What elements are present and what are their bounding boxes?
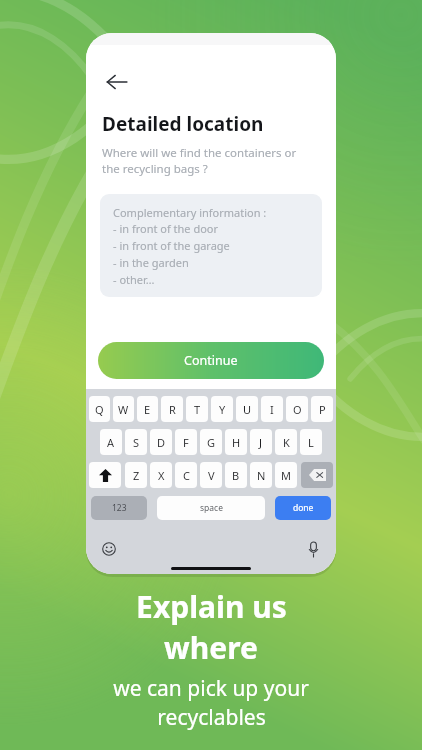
button[interactable]: L bbox=[300, 429, 322, 455]
button[interactable]: Back bbox=[100, 65, 134, 99]
button[interactable]: 123 bbox=[91, 496, 147, 520]
staticText: W bbox=[118, 402, 129, 417]
staticText: K bbox=[283, 435, 290, 450]
button[interactable]: R bbox=[161, 396, 183, 422]
button[interactable]: K bbox=[275, 429, 297, 455]
staticText: X bbox=[158, 468, 165, 483]
staticText: I bbox=[270, 402, 274, 417]
staticText: Detailed location bbox=[102, 111, 264, 137]
staticText: where bbox=[164, 627, 258, 668]
staticText: Z bbox=[133, 468, 140, 483]
staticText: O bbox=[293, 402, 302, 417]
staticText: S bbox=[133, 435, 140, 450]
staticText: E bbox=[144, 402, 151, 417]
button[interactable]: Voice input bbox=[301, 537, 325, 561]
staticText: L bbox=[308, 435, 314, 450]
staticText: C bbox=[183, 468, 190, 483]
button[interactable]: D bbox=[150, 429, 172, 455]
staticText: recyclables bbox=[157, 703, 266, 732]
staticText: 123 bbox=[112, 502, 127, 514]
staticText: V bbox=[208, 468, 215, 483]
button[interactable]: S bbox=[125, 429, 147, 455]
staticText: Explain us bbox=[136, 586, 287, 627]
staticText: we can pick up your bbox=[113, 674, 309, 703]
staticText: Q bbox=[95, 402, 104, 417]
staticText: N bbox=[257, 468, 266, 483]
button[interactable]: F bbox=[175, 429, 197, 455]
staticText: space bbox=[200, 502, 223, 514]
staticText: A bbox=[107, 435, 115, 450]
button[interactable]: Z bbox=[125, 462, 147, 488]
staticText: M bbox=[281, 468, 291, 483]
button[interactable]: G bbox=[200, 429, 222, 455]
staticText: G bbox=[207, 435, 216, 450]
button[interactable]: H bbox=[225, 429, 247, 455]
button[interactable]: I bbox=[261, 396, 283, 422]
staticText: F bbox=[183, 435, 189, 450]
button[interactable]: Backspace bbox=[301, 462, 333, 488]
button[interactable]: X bbox=[150, 462, 172, 488]
button[interactable]: J bbox=[250, 429, 272, 455]
staticText: Where will we find the containers or the… bbox=[102, 145, 297, 176]
button[interactable]: Continue bbox=[98, 342, 324, 379]
button[interactable]: Complementary information : - in front o… bbox=[100, 194, 322, 297]
staticText: H bbox=[232, 435, 241, 450]
button[interactable]: E bbox=[137, 396, 158, 422]
button[interactable]: U bbox=[236, 396, 258, 422]
button[interactable]: done bbox=[275, 496, 331, 520]
staticText: U bbox=[243, 402, 252, 417]
button[interactable]: M bbox=[275, 462, 297, 488]
button[interactable]: V bbox=[200, 462, 222, 488]
staticText: done bbox=[293, 502, 314, 514]
button[interactable]: T bbox=[186, 396, 208, 422]
button[interactable]: space bbox=[157, 496, 265, 520]
button[interactable]: N bbox=[250, 462, 272, 488]
button[interactable]: O bbox=[286, 396, 308, 422]
button[interactable]: Y bbox=[211, 396, 233, 422]
staticText: J bbox=[259, 435, 263, 450]
staticText: P bbox=[319, 402, 326, 417]
button[interactable]: Shift bbox=[89, 462, 121, 488]
button[interactable]: Emoji bbox=[97, 537, 121, 561]
button[interactable]: W bbox=[113, 396, 134, 422]
button[interactable]: A bbox=[100, 429, 122, 455]
staticText: T bbox=[194, 402, 201, 417]
staticText: Complementary information : - in front o… bbox=[113, 205, 267, 287]
staticText: Continue bbox=[184, 352, 238, 369]
button[interactable]: P bbox=[311, 396, 333, 422]
staticText: R bbox=[169, 402, 176, 417]
button[interactable]: Q bbox=[89, 396, 110, 422]
button[interactable]: B bbox=[225, 462, 247, 488]
staticText: B bbox=[232, 468, 240, 483]
staticText: D bbox=[157, 435, 166, 450]
button[interactable]: C bbox=[175, 462, 197, 488]
staticText: Y bbox=[219, 402, 226, 417]
